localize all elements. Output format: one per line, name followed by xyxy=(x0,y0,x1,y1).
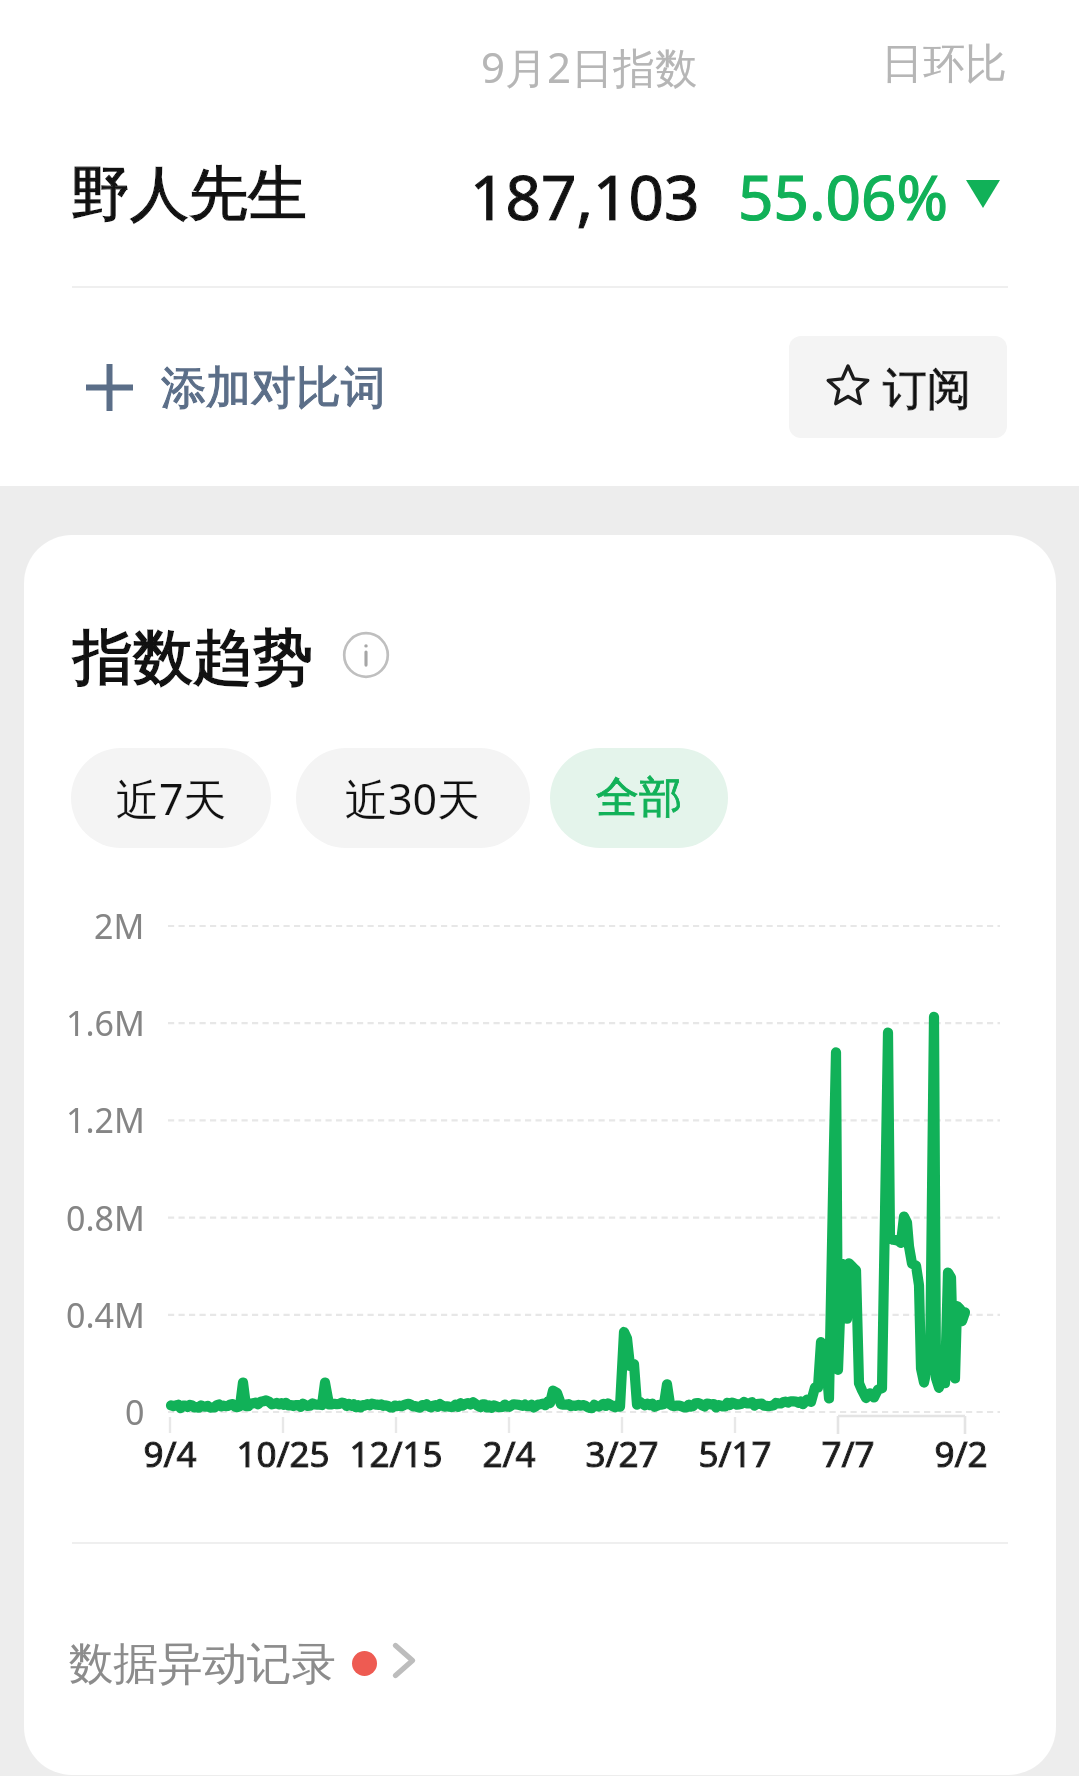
staticText: 野人先生 xyxy=(71,157,307,231)
staticText: 近30天 xyxy=(345,769,481,828)
staticText: 2M xyxy=(94,903,145,949)
staticText: 55.06% xyxy=(738,154,948,238)
staticText: 9/2 xyxy=(934,1430,988,1478)
staticText: 近7天 xyxy=(116,769,227,828)
button[interactable]: 数据异动记录 xyxy=(54,1603,474,1707)
staticText: 0.4M xyxy=(66,1292,145,1338)
staticText: 添加对比词 xyxy=(161,360,386,417)
staticText: 指数趋势 xyxy=(73,620,313,696)
staticText: 9/4 xyxy=(143,1430,197,1478)
staticText: 7/7 xyxy=(821,1430,875,1478)
staticText: 187,103 xyxy=(470,154,700,238)
staticText: 全部 xyxy=(596,771,682,825)
staticText: 3/27 xyxy=(585,1430,659,1478)
staticText: 5/17 xyxy=(698,1430,772,1478)
staticText: 指数趋势 xyxy=(73,620,313,696)
staticText: 2/4 xyxy=(482,1430,536,1478)
staticText: 添加对比词 xyxy=(161,360,386,417)
staticText: 1.6M xyxy=(66,1000,145,1046)
button[interactable]: 全部 xyxy=(550,748,728,848)
staticText: 9/4 xyxy=(143,1430,197,1478)
staticText: 日环比 xyxy=(881,38,1007,91)
staticText: 12/15 xyxy=(349,1430,443,1478)
button[interactable]: 添加对比词 xyxy=(60,330,400,444)
button[interactable]: 近7天 xyxy=(71,748,271,848)
staticText: 野人先生 xyxy=(71,157,307,231)
staticText: 订阅 xyxy=(883,362,971,417)
staticText: 订阅 xyxy=(883,362,971,417)
staticText: 7/7 xyxy=(821,1430,875,1478)
staticText: 3/27 xyxy=(585,1430,659,1478)
staticText: 0 xyxy=(125,1389,145,1435)
staticText: 10/25 xyxy=(236,1430,330,1478)
staticText: 2/4 xyxy=(482,1430,536,1478)
staticText: 数据异动记录 xyxy=(69,1636,336,1692)
staticText: 全部 xyxy=(596,771,682,825)
staticText: 12/15 xyxy=(349,1430,443,1478)
button[interactable]: 订阅 xyxy=(789,336,1007,438)
staticText: 1.2M xyxy=(66,1097,145,1143)
button[interactable]: Info xyxy=(342,631,390,679)
staticText: 55.06% xyxy=(738,154,948,238)
staticText: 5/17 xyxy=(698,1430,772,1478)
staticText: 9/2 xyxy=(934,1430,988,1478)
button[interactable]: 近30天 xyxy=(296,748,530,848)
staticText: 10/25 xyxy=(236,1430,330,1478)
staticText: 187,103 xyxy=(470,154,700,238)
staticText: 0.8M xyxy=(66,1195,145,1241)
staticText: 9月2日指数 xyxy=(481,38,698,95)
